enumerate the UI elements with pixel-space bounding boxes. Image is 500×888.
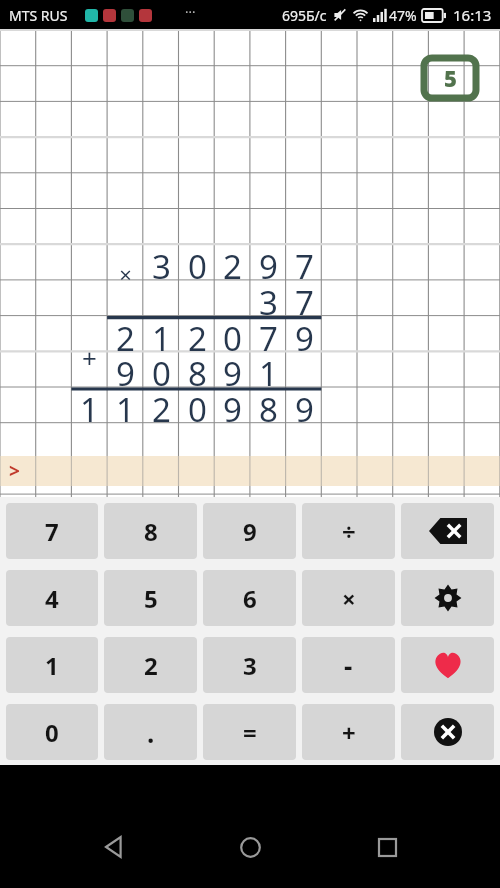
staticText: 9: [295, 387, 314, 423]
staticText: +: [342, 716, 356, 749]
staticText: -: [344, 648, 353, 683]
staticText: 1: [116, 387, 135, 423]
staticText: 1: [152, 316, 171, 352]
staticText: +: [82, 340, 97, 375]
staticText: 3: [243, 649, 257, 682]
staticText: 1: [80, 387, 99, 423]
button[interactable]: 7: [6, 503, 98, 559]
staticText: 47%: [389, 6, 417, 25]
staticText: MTS RUS: [9, 6, 68, 25]
staticText: 16:13: [453, 5, 492, 25]
staticText: 6: [243, 582, 257, 615]
button[interactable]: -: [302, 637, 395, 693]
staticText: .: [147, 715, 155, 750]
button[interactable]: 9: [203, 503, 296, 559]
staticText: 1: [45, 649, 59, 682]
staticText: 9: [259, 244, 278, 280]
button[interactable]: 4: [6, 570, 98, 626]
staticText: 9: [223, 351, 242, 387]
staticText: 7: [295, 280, 314, 316]
staticText: 695Б/с: [282, 6, 327, 25]
staticText: 8: [188, 351, 207, 387]
staticText: 1: [259, 351, 278, 387]
button[interactable]: Recents: [363, 823, 411, 871]
staticText: 3: [152, 244, 171, 280]
staticText: 9: [243, 515, 257, 548]
staticText: 9: [223, 387, 242, 423]
button[interactable]: Clear: [401, 704, 494, 760]
staticText: 8: [144, 515, 158, 548]
staticText: 2: [152, 387, 171, 423]
staticText: ×: [119, 259, 132, 289]
button[interactable]: +: [302, 704, 395, 760]
staticText: 4: [45, 582, 59, 615]
staticText: 7: [295, 244, 314, 280]
staticText: 2: [188, 316, 207, 352]
staticText: 2: [116, 316, 135, 352]
button[interactable]: =: [203, 704, 296, 760]
staticText: 7: [45, 515, 59, 548]
staticText: 0: [188, 244, 207, 280]
button[interactable]: 6: [203, 570, 296, 626]
staticText: 9: [116, 351, 135, 387]
staticText: 9: [295, 316, 314, 352]
button[interactable]: 3: [203, 637, 296, 693]
button[interactable]: .: [104, 704, 197, 760]
staticText: ···: [185, 3, 196, 21]
button[interactable]: ÷: [302, 503, 395, 559]
staticText: 5: [444, 63, 457, 93]
button[interactable]: Backspace: [401, 503, 494, 559]
button[interactable]: Level 5: [422, 56, 478, 100]
button[interactable]: >: [0, 456, 500, 486]
staticText: 5: [144, 582, 158, 615]
staticText: 8: [259, 387, 278, 423]
button[interactable]: 8: [104, 503, 197, 559]
button[interactable]: ×: [302, 570, 395, 626]
button[interactable]: 0: [6, 704, 98, 760]
staticText: 0: [45, 716, 59, 749]
staticText: 2: [223, 244, 242, 280]
staticText: 2: [144, 649, 158, 682]
button[interactable]: Home: [226, 823, 274, 871]
staticText: 0: [223, 316, 242, 352]
staticText: 7: [259, 316, 278, 352]
staticText: ×: [342, 582, 356, 615]
staticText: 3: [259, 280, 278, 316]
staticText: >: [9, 458, 20, 484]
button[interactable]: Back: [89, 823, 137, 871]
staticText: 0: [188, 387, 207, 423]
button[interactable]: 1: [6, 637, 98, 693]
button[interactable]: Settings: [401, 570, 494, 626]
button[interactable]: Favorite: [401, 637, 494, 693]
staticText: 0: [152, 351, 171, 387]
button[interactable]: 2: [104, 637, 197, 693]
staticText: ÷: [342, 515, 356, 548]
button[interactable]: 5: [104, 570, 197, 626]
staticText: =: [243, 716, 257, 749]
